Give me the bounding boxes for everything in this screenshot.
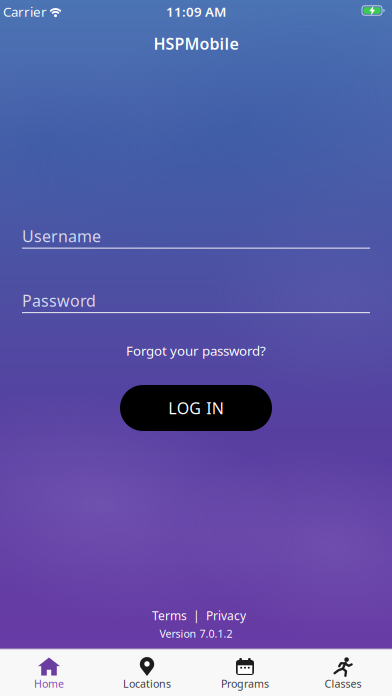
button[interactable]: Forgot your password? [126, 342, 266, 359]
staticText: LOG IN [168, 397, 224, 419]
staticText: Locations [123, 676, 171, 691]
staticText: Home [34, 676, 64, 691]
button[interactable]: LOG IN [120, 385, 272, 431]
button[interactable]: Home [0, 650, 98, 696]
staticText: HSPMobile [153, 33, 238, 54]
staticText: Privacy [206, 607, 246, 623]
staticText: 11:09 AM [166, 3, 226, 20]
staticText: | [193, 607, 200, 623]
button[interactable]: Username [22, 225, 370, 249]
button[interactable]: Classes [294, 650, 392, 696]
button[interactable]: Terms [152, 607, 187, 623]
button[interactable]: Programs [196, 650, 294, 696]
staticText: Version 7.0.1.2 [159, 626, 232, 641]
staticText: Username [22, 225, 101, 247]
button[interactable]: Locations [98, 650, 196, 696]
staticText: Password [22, 290, 96, 311]
staticText: Classes [324, 676, 361, 691]
staticText: Carrier [3, 3, 47, 20]
staticText: Terms [152, 607, 187, 623]
staticText: Forgot your password? [126, 342, 266, 359]
button[interactable]: Password [22, 290, 370, 313]
staticText: Programs [221, 676, 269, 691]
button[interactable]: Privacy [206, 607, 246, 623]
